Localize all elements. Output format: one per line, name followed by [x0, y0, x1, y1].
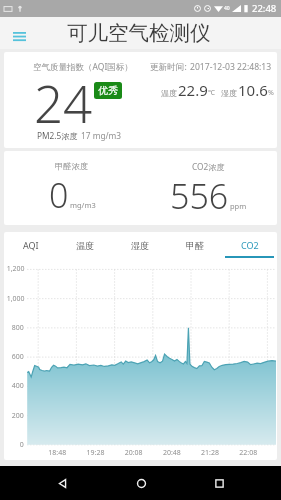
staticText: 24	[34, 68, 93, 137]
button[interactable]: CO2浓度	[140, 151, 277, 225]
button[interactable]: 温度	[58, 232, 112, 258]
staticText: 湿度	[221, 88, 237, 98]
staticText: 556	[170, 173, 229, 219]
staticText: 22:48	[252, 2, 277, 15]
button[interactable]: Menu	[7, 24, 31, 48]
staticText: 22.9	[178, 80, 208, 100]
staticText: 温度	[161, 88, 177, 98]
staticText: 0	[49, 172, 69, 218]
staticText: 空气质量指数（AQI国标）	[33, 61, 133, 73]
staticText: 温度	[76, 240, 94, 251]
staticText: 17 mg/m3	[81, 130, 122, 141]
staticText: %	[268, 88, 274, 98]
button[interactable]: 空气质量指数（AQI国标）	[4, 52, 277, 148]
staticText: CO2浓度	[192, 161, 225, 172]
button[interactable]: 甲醛浓度	[4, 151, 140, 225]
staticText: 甲醛浓度	[55, 161, 89, 171]
staticText: PM2.5浓度	[37, 130, 78, 141]
staticText: AQI	[23, 239, 39, 251]
staticText: 更新时间:	[150, 61, 187, 73]
staticText: 10.6	[238, 80, 268, 100]
staticText: 甲醛	[186, 240, 204, 251]
staticText: 优秀	[98, 84, 118, 97]
staticText: CO2	[241, 239, 259, 251]
staticText: 湿度	[131, 240, 149, 251]
button[interactable]: AQI	[4, 232, 58, 258]
button[interactable]: CO2	[222, 232, 277, 258]
button[interactable]: Recents	[202, 466, 236, 500]
button[interactable]: 甲醛	[167, 232, 222, 258]
staticText: ℃	[208, 88, 215, 98]
button[interactable]: 湿度	[112, 232, 167, 258]
staticText: 2017-12-03 22:48:13	[190, 61, 272, 73]
button[interactable]: Back	[45, 466, 79, 500]
staticText: 40	[224, 5, 230, 12]
button[interactable]: Home	[124, 466, 158, 500]
staticText: ppm	[230, 201, 247, 211]
staticText: mg/m3	[70, 200, 96, 210]
staticText: 可儿空气检测仪	[67, 20, 211, 46]
